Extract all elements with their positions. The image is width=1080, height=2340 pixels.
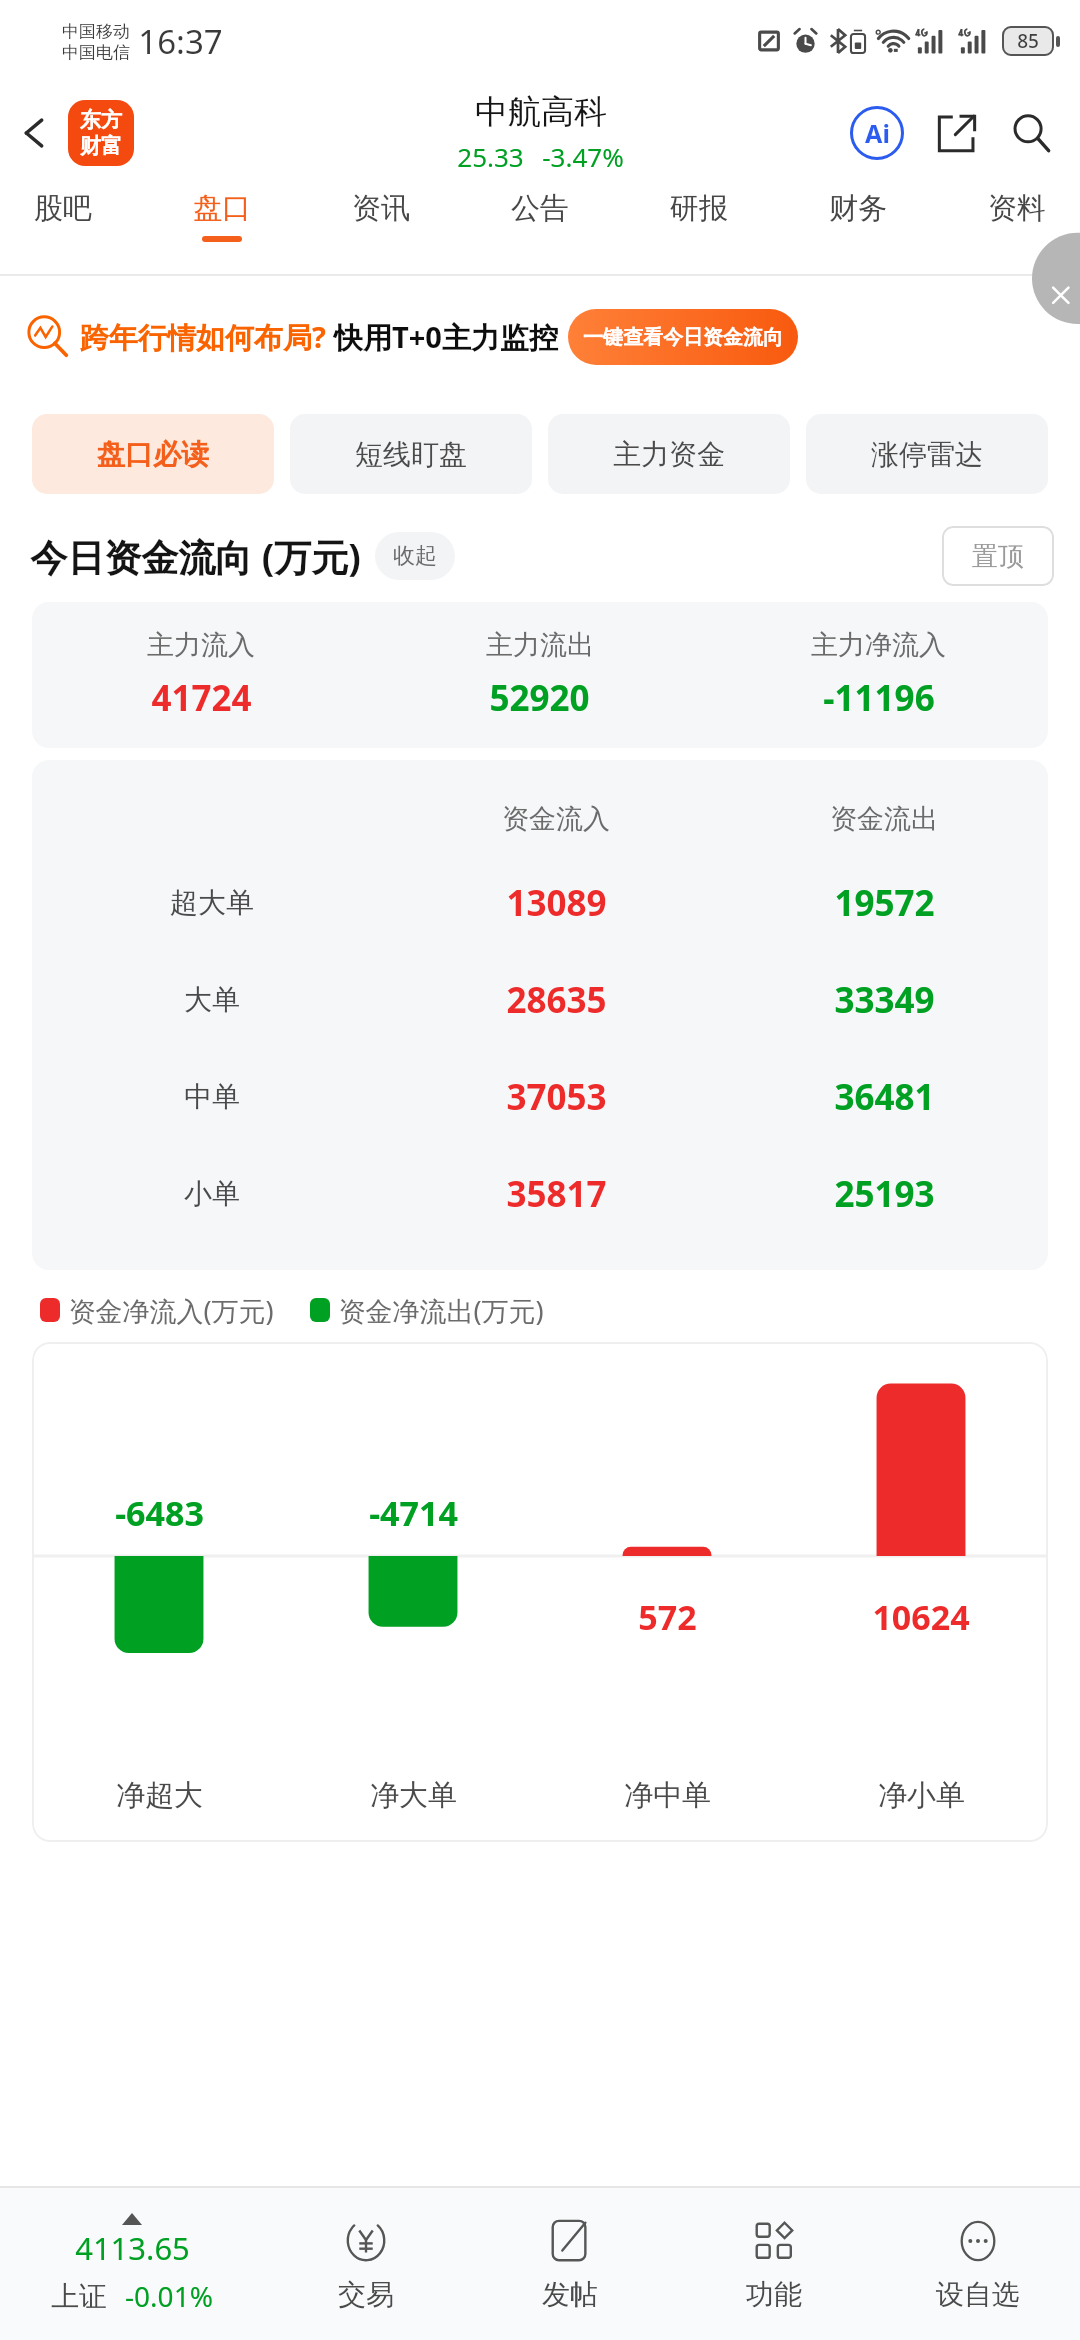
staticText: 37053 (506, 1073, 607, 1121)
staticText: -11196 (823, 674, 935, 722)
button[interactable]: 资料 (980, 184, 1054, 248)
staticText: 41724 (151, 674, 252, 722)
staticText: 置顶 (972, 540, 1024, 573)
staticText: 盘口 (193, 190, 251, 227)
button[interactable]: 跨年行情如何布局? (26, 309, 1080, 365)
button[interactable]: 交易 (264, 2188, 468, 2340)
staticText: 主力净流入 (811, 628, 946, 662)
button[interactable]: 短线盯盘 (290, 414, 532, 494)
staticText: 中国移动 (62, 21, 130, 42)
staticText: 设自选 (936, 2277, 1020, 2312)
staticText: 短线盯盘 (355, 437, 467, 472)
staticText: 25193 (834, 1170, 935, 1218)
staticText: 今日资金流向 (万元) (30, 531, 361, 582)
button[interactable]: 功能 (672, 2188, 876, 2340)
staticText: 13089 (506, 879, 607, 927)
staticText: 公告 (511, 190, 569, 227)
staticText: 功能 (746, 2277, 802, 2312)
staticText: 涨停雷达 (871, 437, 983, 472)
button[interactable]: 盘口 (185, 184, 259, 248)
button[interactable]: 置顶 (942, 526, 1054, 586)
button[interactable]: 财务 (821, 184, 895, 248)
staticText: 财富 (80, 133, 122, 159)
button[interactable]: 收起 (375, 532, 455, 580)
staticText: 小单 (184, 1176, 240, 1211)
staticText: 一键查看今日资金流向 (583, 325, 783, 350)
staticText: -0.01% (125, 2277, 213, 2315)
staticText: 研报 (670, 190, 728, 227)
staticText: 超大单 (170, 885, 254, 920)
staticText: 中国电信 (62, 42, 130, 63)
staticText: 35817 (506, 1170, 607, 1218)
staticText: 主力流出 (486, 628, 594, 662)
staticText: 36481 (834, 1073, 935, 1121)
button[interactable]: AI 助手 (846, 102, 908, 164)
staticText: 资金净流入(万元) (68, 1292, 274, 1329)
staticText: 净小单 (878, 1777, 965, 1814)
button[interactable]: Share (928, 104, 986, 162)
staticText: 财务 (829, 190, 887, 227)
staticText: 中航高科 (475, 91, 607, 133)
staticText: 跨年行情如何布局? (80, 317, 326, 357)
staticText: 资金净流出(万元) (338, 1292, 544, 1329)
staticText: -6483 (115, 1490, 204, 1536)
button[interactable]: 股吧 (26, 184, 100, 248)
staticText: 资讯 (352, 190, 410, 227)
button[interactable]: 一键查看今日资金流向 (568, 309, 798, 365)
staticText: 28635 (506, 976, 607, 1024)
button[interactable]: 设自选 (876, 2188, 1080, 2340)
staticText: 16:37 (138, 19, 223, 64)
button[interactable]: 涨停雷达 (806, 414, 1048, 494)
button[interactable]: 研报 (662, 184, 736, 248)
staticText: 85 (1017, 28, 1039, 54)
staticText: 25.33 (457, 139, 524, 174)
button[interactable]: 资讯 (344, 184, 418, 248)
staticText: 主力流入 (147, 628, 255, 662)
staticText: 盘口必读 (97, 437, 209, 472)
staticText: 资料 (988, 190, 1046, 227)
staticText: 股吧 (34, 190, 92, 227)
staticText: 33349 (834, 976, 935, 1024)
button[interactable]: 东方财富 (68, 100, 134, 166)
staticText: 10624 (872, 1594, 970, 1640)
staticText: 净中单 (624, 1777, 711, 1814)
staticText: 资金流出 (830, 802, 938, 836)
button[interactable]: 主力资金 (548, 414, 790, 494)
button[interactable]: Search (1002, 104, 1060, 162)
staticText: 52920 (489, 674, 590, 722)
button[interactable]: 主力流入 (32, 602, 1048, 748)
staticText: 4113.65 (75, 2227, 190, 2269)
button[interactable]: -6483 (32, 1342, 1048, 1842)
staticText: 发帖 (542, 2277, 598, 2312)
button[interactable]: Close ad (1032, 276, 1080, 324)
staticText: -3.47% (542, 139, 624, 174)
staticText: -4714 (369, 1490, 458, 1536)
button[interactable]: 资金流入 (32, 760, 1048, 1270)
staticText: 收起 (393, 542, 437, 570)
staticText: 19572 (834, 879, 935, 927)
staticText: 资金流入 (502, 802, 610, 836)
staticText: 净超大 (116, 1777, 203, 1814)
button[interactable]: 发帖 (468, 2188, 672, 2340)
staticText: Ai (865, 116, 890, 150)
button[interactable]: 盘口必读 (32, 414, 274, 494)
button[interactable]: 4113.65 (0, 2188, 264, 2340)
staticText: 主力资金 (613, 437, 725, 472)
staticText: 净大单 (370, 1777, 457, 1814)
staticText: 快用T+0主力监控 (334, 317, 558, 357)
staticText: 572 (638, 1594, 697, 1640)
staticText: 大单 (184, 982, 240, 1017)
staticText: 上证 (51, 2279, 107, 2314)
button[interactable]: Back (0, 99, 68, 167)
staticText: 东方 (80, 107, 122, 133)
button[interactable]: 公告 (503, 184, 577, 248)
staticText: 交易 (338, 2277, 394, 2312)
staticText: 中单 (184, 1079, 240, 1114)
